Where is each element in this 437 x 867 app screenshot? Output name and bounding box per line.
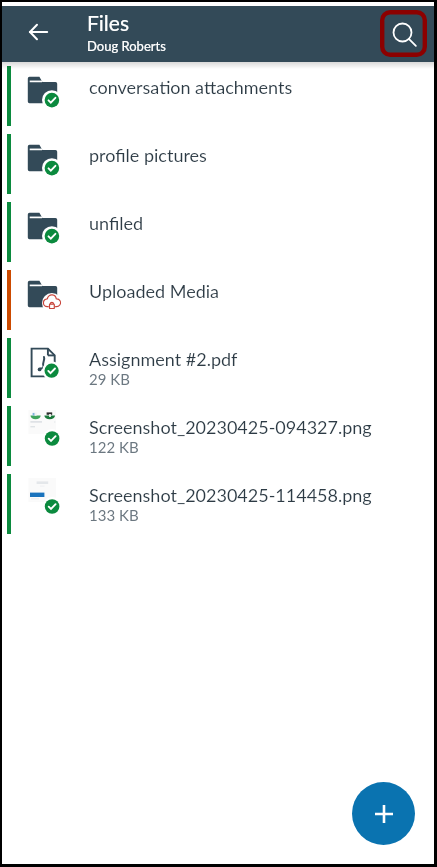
button[interactable]: unfiled [2,198,434,266]
staticText: unfiled [89,212,144,234]
staticText: Uploaded Media [89,280,220,302]
staticText: Screenshot_20230425-114458.png [89,484,372,506]
button[interactable]: Back [15,9,61,55]
button[interactable]: conversation attachments [2,62,434,130]
button[interactable]: Uploaded Media [2,266,434,334]
button[interactable]: Assignment #2.pdf [2,334,434,402]
staticText: Files [87,10,130,35]
button[interactable]: profile pictures [2,130,434,198]
button[interactable]: Screenshot_20230425-114458.png [2,470,434,538]
button[interactable]: Search [380,10,427,57]
staticText: 29 KB [89,370,130,388]
staticText: 122 KB [89,438,139,456]
button[interactable]: Add [352,782,415,845]
staticText: Assignment #2.pdf [89,348,238,370]
staticText: conversation attachments [89,76,293,98]
staticText: Screenshot_20230425-094327.png [89,416,372,438]
staticText: 133 KB [89,506,139,524]
staticText: Doug Roberts [87,38,166,54]
staticText: profile pictures [89,144,207,166]
button[interactable]: Screenshot_20230425-094327.png [2,402,434,470]
